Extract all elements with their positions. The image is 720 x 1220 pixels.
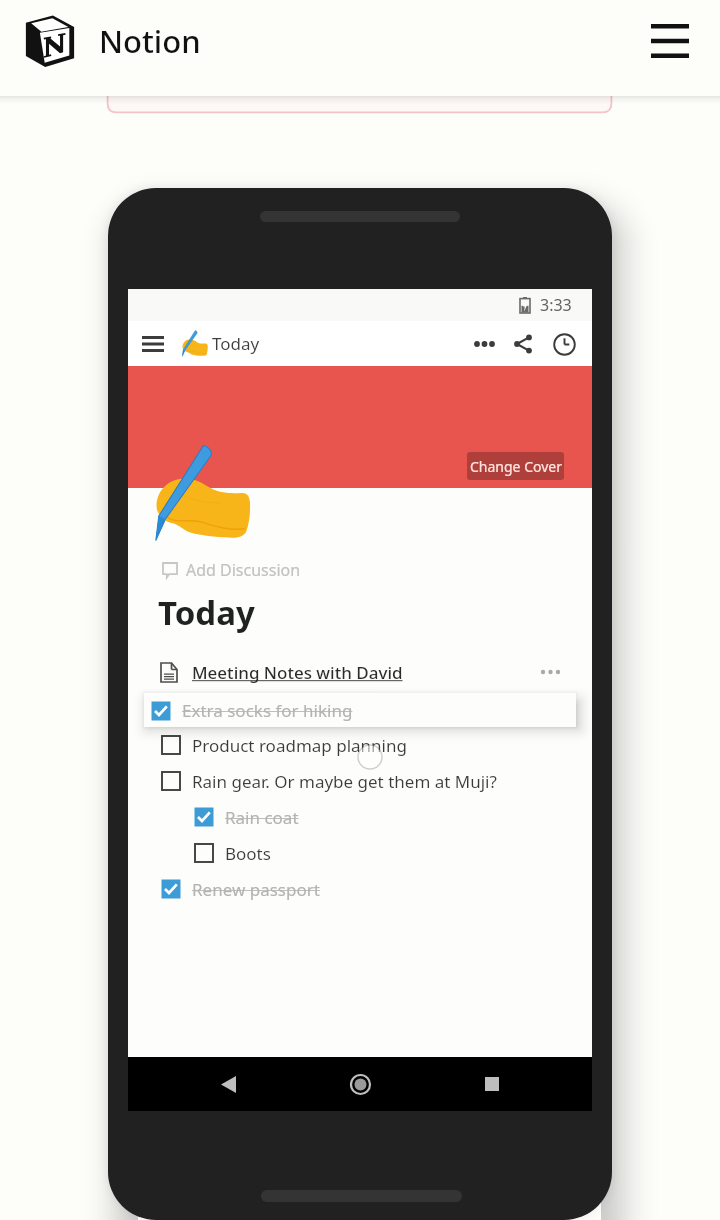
button[interactable]: Product roadmap planning bbox=[161, 727, 592, 763]
button[interactable]: Menu bbox=[136, 327, 170, 361]
button[interactable]: Meeting Notes with David bbox=[160, 655, 592, 689]
button[interactable]: Recents bbox=[472, 1064, 512, 1104]
button[interactable]: Open menu bbox=[642, 13, 698, 69]
staticText: Rain coat bbox=[225, 806, 299, 829]
staticText: Extra socks for hiking bbox=[182, 699, 353, 722]
button[interactable]: More options bbox=[468, 328, 500, 360]
button[interactable]: Extra socks for hiking bbox=[144, 693, 576, 727]
staticText: 3:33 bbox=[540, 294, 572, 316]
staticText: Boots bbox=[225, 842, 271, 865]
button[interactable]: Boots bbox=[194, 835, 592, 871]
button[interactable]: Rain coat bbox=[194, 799, 592, 835]
staticText: Today bbox=[158, 590, 255, 635]
button[interactable]: Change Cover bbox=[467, 452, 564, 480]
staticText: Rain gear. Or maybe get them at Muji? bbox=[192, 770, 497, 793]
staticText: Add Discussion bbox=[186, 559, 301, 581]
button[interactable]: History bbox=[548, 328, 580, 360]
button[interactable]: Renew passport bbox=[161, 871, 592, 907]
staticText: Today bbox=[212, 332, 260, 355]
staticText: Product roadmap planning bbox=[192, 734, 407, 757]
button[interactable]: Add Discussion bbox=[162, 557, 301, 583]
staticText: Renew passport bbox=[192, 878, 320, 901]
button[interactable]: Notion bbox=[23, 13, 201, 69]
staticText: Notion bbox=[99, 20, 201, 62]
staticText: Meeting Notes with David bbox=[192, 661, 403, 684]
button[interactable]: Share bbox=[507, 328, 539, 360]
button[interactable]: Row options bbox=[535, 657, 565, 687]
button[interactable]: Back bbox=[208, 1064, 248, 1104]
staticText: Change Cover bbox=[470, 457, 562, 476]
button[interactable]: Rain gear. Or maybe get them at Muji? bbox=[161, 763, 592, 799]
button[interactable] bbox=[161, 691, 592, 727]
button[interactable]: Home bbox=[340, 1064, 380, 1104]
